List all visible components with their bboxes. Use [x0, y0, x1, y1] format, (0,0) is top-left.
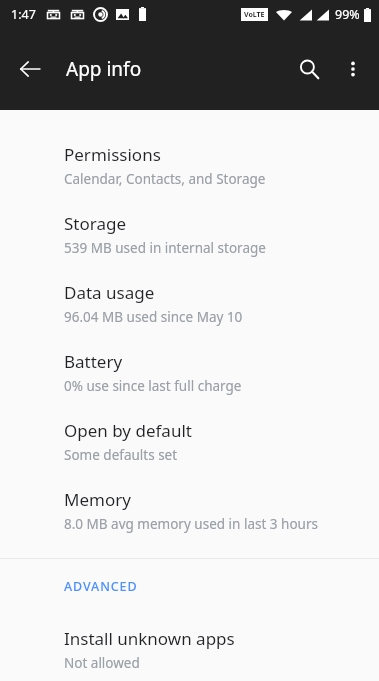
button[interactable]: Search [287, 47, 331, 91]
staticText: ADVANCED [64, 578, 138, 595]
staticText: Battery [64, 350, 123, 373]
staticText: Calendar, Contacts, and Storage [64, 170, 266, 188]
staticText: 99% [335, 6, 360, 23]
staticText: Data usage [64, 281, 155, 304]
staticText: 539 MB used in internal storage [64, 239, 266, 257]
button[interactable]: Back [10, 49, 50, 89]
button[interactable]: Data usage [0, 270, 379, 339]
staticText: Memory [64, 488, 131, 511]
staticText: App info [66, 56, 142, 82]
button[interactable]: More options [331, 47, 375, 91]
button[interactable]: Storage [0, 201, 379, 270]
button[interactable]: Battery [0, 339, 379, 408]
staticText: 96.04 MB used since May 10 [64, 308, 243, 326]
staticText: Not allowed [64, 654, 140, 668]
button[interactable]: Install unknown apps [0, 616, 379, 681]
staticText: Some defaults set [64, 446, 178, 464]
staticText: 0% use since last full charge [64, 377, 242, 395]
button[interactable]: Open by default [0, 408, 379, 477]
staticText: Storage [64, 212, 127, 235]
staticText: Permissions [64, 143, 161, 166]
staticText: VoLTE [244, 10, 265, 20]
staticText: Open by default [64, 419, 192, 442]
staticText: 1:47 [11, 6, 36, 23]
staticText: Install unknown apps [64, 627, 235, 650]
button[interactable]: Memory [0, 477, 379, 546]
button[interactable]: Permissions [0, 132, 379, 201]
staticText: 8.0 MB avg memory used in last 3 hours [64, 515, 318, 533]
